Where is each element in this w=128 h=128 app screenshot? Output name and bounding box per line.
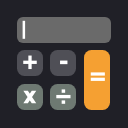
button[interactable]: Equals [84, 50, 110, 110]
button[interactable]: Divide [50, 84, 76, 110]
button[interactable]: Plus [17, 50, 43, 76]
button[interactable]: Minus [50, 50, 76, 76]
button[interactable]: Display [17, 17, 111, 43]
button[interactable]: Multiply [17, 84, 43, 110]
